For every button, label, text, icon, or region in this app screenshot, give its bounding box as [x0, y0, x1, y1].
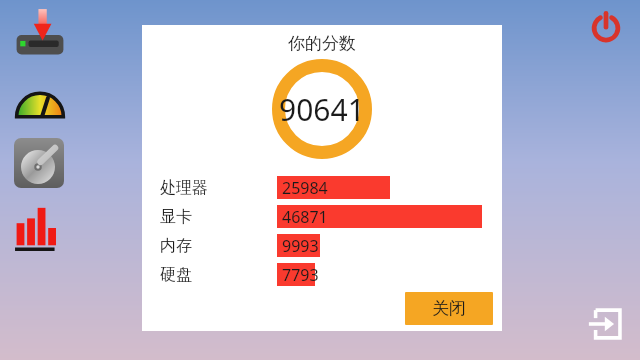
- staticText: 25984: [282, 177, 328, 199]
- button[interactable]: Exit: [583, 303, 625, 345]
- staticText: 90641: [279, 89, 365, 130]
- button[interactable]: Benchmark: [14, 78, 66, 122]
- staticText: 关闭: [432, 298, 466, 319]
- staticText: 46871: [282, 206, 328, 228]
- staticText: 显卡: [160, 207, 192, 227]
- button[interactable]: 显卡: [142, 202, 502, 231]
- button[interactable]: 内存: [142, 231, 502, 260]
- staticText: 硬盘: [160, 265, 192, 285]
- button[interactable]: 关闭: [405, 292, 493, 325]
- staticText: 内存: [160, 236, 192, 256]
- button[interactable]: Disk: [14, 138, 64, 188]
- staticText: 你的分数: [142, 33, 502, 54]
- button[interactable]: Install: [14, 8, 66, 62]
- button[interactable]: Power: [588, 8, 624, 44]
- staticText: 处理器: [160, 178, 208, 198]
- button[interactable]: 硬盘: [142, 260, 502, 289]
- staticText: 9993: [282, 235, 319, 257]
- button[interactable]: 处理器: [142, 173, 502, 202]
- button[interactable]: Results: [14, 204, 66, 252]
- staticText: 7793: [282, 264, 319, 286]
